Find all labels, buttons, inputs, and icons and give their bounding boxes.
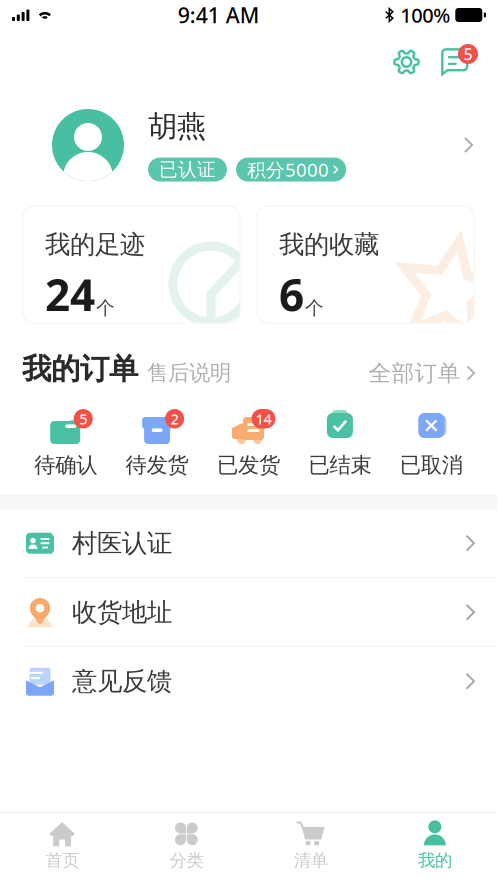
staticText: 已认证 xyxy=(159,158,216,181)
staticText: 我的 xyxy=(418,850,452,871)
staticText: 售后说明 xyxy=(147,360,231,386)
button[interactable]: 分类 xyxy=(124,813,249,883)
staticText: 意见反馈 xyxy=(72,666,172,697)
button[interactable]: 我的足迹 xyxy=(23,206,240,323)
staticText: 首页 xyxy=(45,850,79,871)
button[interactable]: 14 xyxy=(203,407,294,481)
staticText: 村医认证 xyxy=(72,528,172,559)
staticText: 14 xyxy=(255,409,271,428)
staticText: 胡燕 xyxy=(148,108,206,144)
button[interactable]: 胡燕 xyxy=(0,94,497,196)
staticText: 已取消 xyxy=(400,452,463,478)
staticText: 2 xyxy=(171,409,179,428)
button[interactable]: Settings xyxy=(393,48,420,75)
staticText: 9:41 AM xyxy=(178,1,260,29)
button[interactable]: 2 xyxy=(111,407,203,481)
button[interactable]: 5 xyxy=(20,407,111,481)
staticText: 已发货 xyxy=(217,452,280,478)
button[interactable]: 意见反馈 xyxy=(0,647,497,715)
staticText: 分类 xyxy=(169,850,203,871)
button[interactable]: 全部订单 xyxy=(369,359,475,387)
staticText: 待发货 xyxy=(126,452,189,478)
button[interactable]: 我的 xyxy=(373,813,497,883)
staticText: 100% xyxy=(400,2,450,28)
staticText: 24 xyxy=(45,265,95,323)
staticText: 已结束 xyxy=(308,452,371,478)
button[interactable]: 已结束 xyxy=(294,407,386,481)
staticText: 收货地址 xyxy=(72,597,172,628)
staticText: 我的订单 xyxy=(22,351,138,387)
staticText: 个 xyxy=(96,297,115,319)
button[interactable]: Messages xyxy=(441,48,478,76)
staticText: 积分5000 xyxy=(247,157,329,182)
staticText: 个 xyxy=(305,297,324,319)
staticText: 清单 xyxy=(294,850,328,871)
staticText: 5 xyxy=(463,43,472,65)
staticText: 我的足迹 xyxy=(45,229,145,260)
staticText: 全部订单 xyxy=(369,359,461,387)
button[interactable]: 村医认证 xyxy=(0,509,497,578)
button[interactable]: 已取消 xyxy=(386,407,477,481)
staticText: 待确认 xyxy=(34,452,97,478)
staticText: 6 xyxy=(279,265,304,323)
staticText: 5 xyxy=(79,409,87,428)
button[interactable]: 首页 xyxy=(0,813,124,883)
button[interactable]: 我的收藏 xyxy=(257,206,474,323)
staticText: 我的收藏 xyxy=(279,229,379,260)
button[interactable]: 收货地址 xyxy=(0,578,497,647)
button[interactable]: 清单 xyxy=(248,813,373,883)
